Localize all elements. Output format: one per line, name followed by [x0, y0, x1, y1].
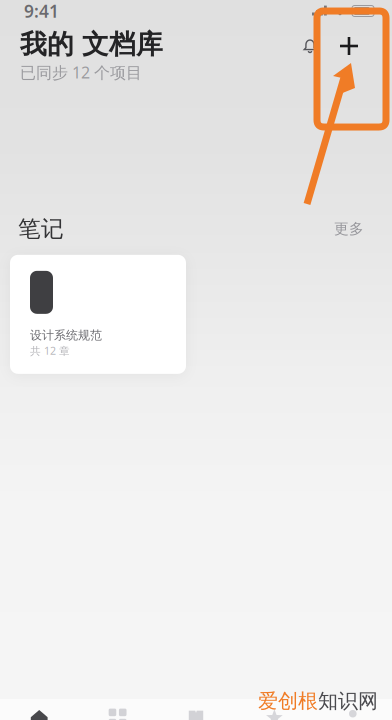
staticText: 爱创根 [258, 689, 318, 713]
staticText: 已同步 12 个项目 [20, 62, 142, 83]
button[interactable]: Add [327, 29, 371, 63]
button[interactable]: Home [0, 708, 78, 720]
button[interactable]: 更多 [334, 216, 364, 242]
staticText: 共 12 章 [30, 344, 70, 358]
staticText: 笔记 [18, 215, 64, 243]
button[interactable]: Library [157, 708, 235, 720]
staticText: 我的 文档库 [20, 28, 163, 61]
button[interactable]: Profile [314, 708, 392, 720]
staticText: 9:41 [24, 0, 59, 22]
staticText: 更多 [334, 220, 364, 238]
staticText: 知识网 [318, 689, 378, 713]
button[interactable]: Browse [78, 708, 157, 720]
staticText: 设计系统规范 [30, 328, 102, 342]
button[interactable]: Favourites [235, 708, 314, 720]
button[interactable]: Notifications [293, 29, 327, 63]
